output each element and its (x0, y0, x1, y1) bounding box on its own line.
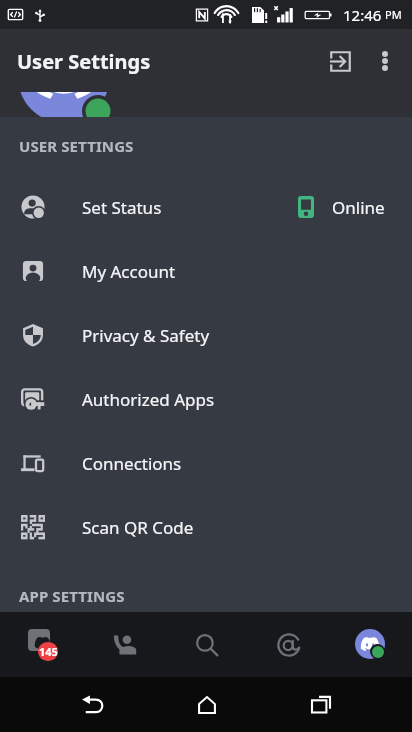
staticText: APP SETTINGS (19, 586, 125, 606)
button[interactable]: Servers (0, 612, 83, 677)
staticText: Scan QR Code (82, 516, 194, 539)
staticText: Online (332, 196, 385, 219)
button[interactable]: Home (182, 677, 231, 732)
staticText: 145 (39, 644, 58, 659)
staticText: Connections (82, 452, 182, 475)
button[interactable]: My Account (0, 239, 412, 303)
staticText: 12:46 (343, 5, 382, 25)
staticText: User Settings (17, 48, 151, 75)
button[interactable]: Mentions (248, 612, 330, 677)
button[interactable]: Privacy & Safety (0, 303, 412, 367)
button[interactable]: Log out (317, 38, 363, 84)
staticText: My Account (82, 260, 176, 283)
button[interactable]: Friends (83, 612, 166, 677)
staticText: Set Status (82, 196, 162, 219)
button[interactable]: Set Status (0, 175, 412, 239)
staticText: PM (385, 7, 402, 22)
button[interactable]: Authorized Apps (0, 367, 412, 431)
button[interactable]: Profile (330, 612, 412, 677)
button[interactable]: Search (166, 612, 248, 677)
button[interactable]: Back (68, 677, 117, 732)
staticText: USER SETTINGS (19, 136, 134, 156)
button[interactable]: More options (363, 39, 407, 83)
button[interactable]: Recents (296, 677, 345, 732)
staticText: Privacy & Safety (82, 324, 210, 347)
staticText: Authorized Apps (82, 388, 215, 411)
button[interactable]: Connections (0, 431, 412, 495)
button[interactable]: Scan QR Code (0, 495, 412, 559)
